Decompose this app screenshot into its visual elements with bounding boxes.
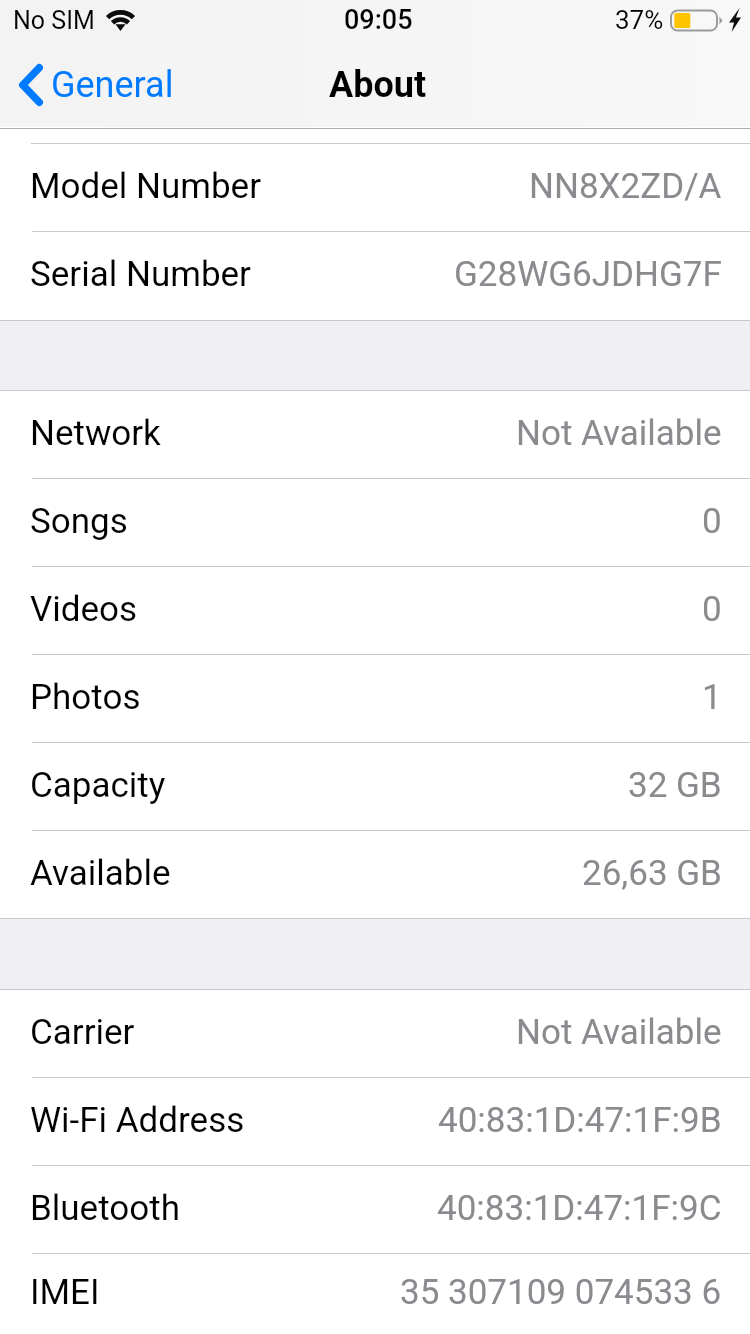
button[interactable]: Serial Number [0, 232, 750, 320]
button[interactable]: IMEI [0, 1254, 750, 1334]
button[interactable]: Wi-Fi Address [0, 1078, 750, 1166]
button[interactable]: Carrier [0, 990, 750, 1078]
staticText: 0 [702, 501, 722, 542]
button[interactable]: Back to General [0, 56, 188, 120]
staticText: 26,63 GB [582, 853, 722, 894]
button[interactable]: Network [0, 391, 750, 479]
button[interactable]: Videos [0, 567, 750, 655]
staticText: Wi-Fi Address [30, 1100, 245, 1141]
staticText: G28WG6JDHG7F [454, 254, 722, 295]
staticText: 37% [615, 5, 664, 35]
staticText: 40:83:1D:47:1F:9C [437, 1188, 722, 1229]
staticText: About [329, 64, 427, 106]
staticText: 0 [702, 589, 722, 630]
staticText: Model Number [30, 166, 262, 207]
staticText: Capacity [30, 765, 166, 806]
button[interactable]: Available [0, 831, 750, 918]
staticText: 1 [702, 677, 722, 718]
staticText: 35 307109 074533 6 [400, 1272, 722, 1313]
staticText: Available [30, 853, 171, 894]
staticText: 09:05 [344, 4, 413, 36]
staticText: Network [30, 413, 161, 454]
staticText: Bluetooth [30, 1188, 180, 1229]
staticText: IMEI [30, 1272, 100, 1313]
staticText: NN8X2ZD/A [529, 166, 722, 207]
button[interactable]: Bluetooth [0, 1166, 750, 1254]
button[interactable]: Capacity [0, 743, 750, 831]
staticText: Carrier [30, 1012, 135, 1053]
staticText: 32 GB [628, 765, 722, 806]
staticText: Songs [30, 501, 128, 542]
staticText: No SIM [13, 6, 95, 35]
staticText: Not Available [516, 413, 722, 454]
staticText: Not Available [516, 1012, 722, 1053]
button[interactable]: Photos [0, 655, 750, 743]
staticText: General [51, 64, 174, 106]
staticText: 40:83:1D:47:1F:9B [438, 1100, 722, 1141]
staticText: Photos [30, 677, 141, 718]
staticText: Serial Number [30, 254, 251, 295]
button[interactable]: Model Number [0, 144, 750, 232]
staticText: Videos [30, 589, 138, 630]
button[interactable]: Songs [0, 479, 750, 567]
